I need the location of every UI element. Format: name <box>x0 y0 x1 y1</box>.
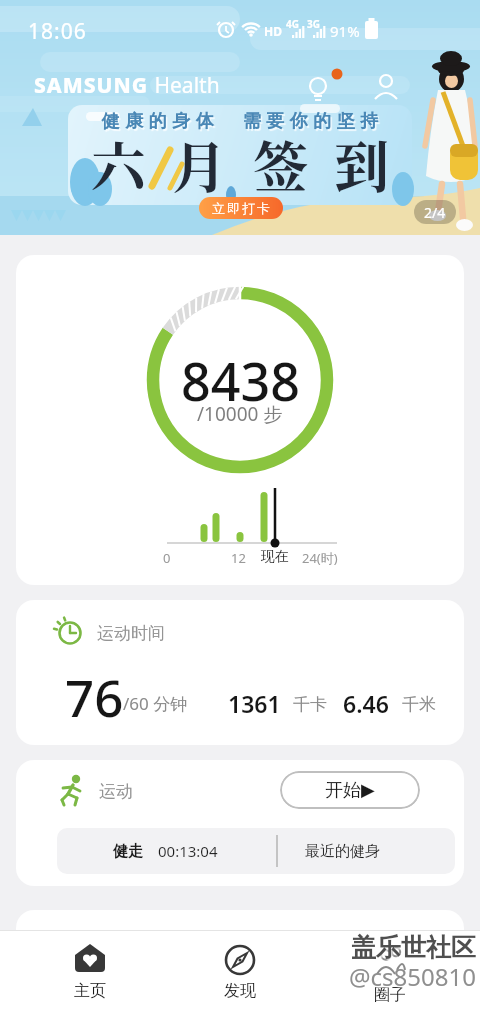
staticText: 盖乐世社区 <box>351 932 476 960</box>
staticText: 3G <box>307 17 320 31</box>
staticText: 91% <box>330 21 360 41</box>
staticText: 76 <box>65 662 124 724</box>
button[interactable]: 立即打卡 <box>199 197 283 219</box>
staticText: 健康的身体 需要你的坚持 <box>99 108 381 133</box>
staticText: 0 <box>163 549 171 567</box>
button[interactable]: 发现 <box>190 930 290 1013</box>
staticText: 主页 <box>74 981 106 1001</box>
staticText: /10000 步 <box>197 401 283 425</box>
button[interactable]: 开始▶ <box>280 771 420 809</box>
button[interactable]: 圈子 <box>340 930 440 1013</box>
staticText: 运动 <box>99 781 133 802</box>
staticText: 立即打卡 <box>211 200 271 216</box>
staticText: 六月签到 <box>91 124 416 198</box>
button[interactable]: 主页 <box>40 930 140 1013</box>
staticText: Health <box>149 71 220 100</box>
staticText: 千卡 <box>293 694 327 715</box>
button[interactable]: 健走 <box>57 828 455 874</box>
staticText: 24(时) <box>302 549 338 567</box>
staticText: 8438 <box>181 345 300 407</box>
staticText: HD <box>264 23 282 39</box>
staticText: 6.46 <box>343 688 389 714</box>
staticText: @cs850810 <box>349 960 476 988</box>
staticText: SAMSUNG <box>34 71 149 100</box>
button[interactable]: 8438 <box>16 255 464 585</box>
staticText: 千米 <box>402 694 436 715</box>
staticText: 圈子 <box>374 985 406 1005</box>
staticText: 18:06 <box>28 17 87 46</box>
staticText: 开始▶ <box>325 779 375 802</box>
staticText: 发现 <box>224 981 256 1001</box>
staticText: 12 <box>231 549 246 567</box>
staticText: 2/4 <box>424 203 446 222</box>
staticText: 00:13:04 <box>158 841 218 861</box>
staticText: /60 分钟 <box>123 692 188 714</box>
staticText: 现在 <box>261 548 289 566</box>
staticText: 健走 <box>113 842 143 861</box>
staticText: 1361 <box>228 688 281 714</box>
staticText: 运动时间 <box>97 623 165 644</box>
staticText: 最近的健身 <box>305 842 380 861</box>
button[interactable]: 运动时间 <box>16 600 464 745</box>
staticText: 4G <box>286 17 299 31</box>
